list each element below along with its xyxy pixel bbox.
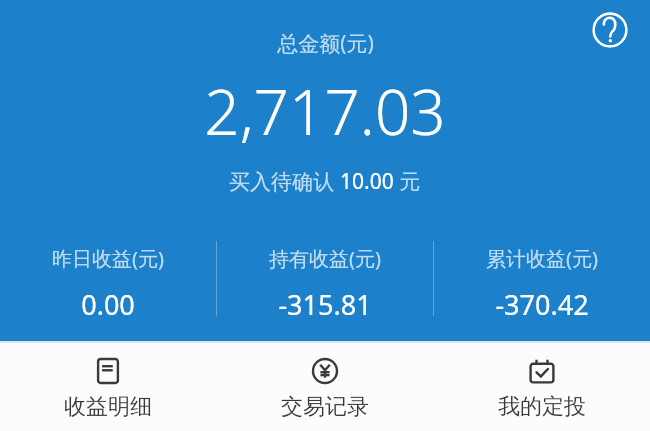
staticText: 我的定投: [498, 393, 586, 421]
staticText: 买入待确认: [229, 167, 340, 196]
button[interactable]: 我的定投: [433, 343, 650, 431]
staticText: 收益明细: [64, 393, 152, 421]
staticText: 累计收益(元): [486, 245, 598, 272]
button[interactable]: 昨日收益(元): [0, 238, 216, 320]
staticText: 2,717.03: [204, 69, 446, 153]
staticText: -315.81: [278, 286, 372, 320]
staticText: 持有收益(元): [269, 245, 381, 272]
button[interactable]: Help: [592, 12, 628, 48]
button[interactable]: 累计收益(元): [434, 238, 650, 320]
staticText: 总金额(元): [277, 29, 374, 58]
staticText: 10.00: [340, 167, 394, 196]
staticText: 交易记录: [281, 393, 369, 421]
staticText: 昨日收益(元): [52, 245, 164, 272]
staticText: -370.42: [495, 286, 589, 320]
staticText: 0.00: [81, 286, 135, 320]
button[interactable]: 收益明细: [0, 343, 216, 431]
button[interactable]: 持有收益(元): [217, 238, 433, 320]
staticText: 元: [394, 167, 421, 196]
button[interactable]: 交易记录: [216, 343, 433, 431]
